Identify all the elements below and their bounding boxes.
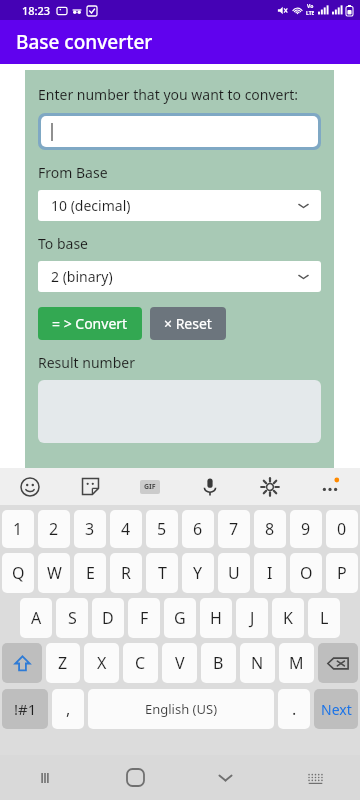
button[interactable]: A: [20, 598, 52, 638]
staticText: F: [140, 607, 149, 629]
staticText: 9: [301, 518, 311, 540]
staticText: 1: [13, 518, 23, 540]
button[interactable]: V: [162, 643, 197, 683]
button[interactable]: 0: [326, 510, 358, 548]
button[interactable]: F: [128, 598, 160, 638]
button[interactable]: E: [74, 553, 106, 593]
button[interactable]: M: [279, 643, 314, 683]
button[interactable]: W: [38, 553, 70, 593]
button[interactable]: I: [254, 553, 286, 593]
button[interactable]: 1: [2, 510, 34, 548]
button[interactable]: Next: [314, 689, 358, 729]
staticText: 10 (decimal): [51, 196, 131, 215]
button[interactable]: X: [84, 643, 119, 683]
staticText: = > Convert: [52, 314, 128, 333]
staticText: L: [320, 607, 329, 629]
staticText: 2 (binary): [51, 267, 113, 286]
button[interactable]: .: [278, 689, 310, 729]
button[interactable]: Recent apps: [0, 755, 90, 800]
button[interactable]: Hide keyboard: [180, 755, 270, 800]
staticText: Y: [193, 562, 203, 584]
staticText: !#1: [14, 699, 37, 719]
button[interactable]: 10 (decimal): [38, 190, 321, 221]
button[interactable]: Backspace: [318, 643, 358, 683]
staticText: H: [210, 607, 222, 629]
button[interactable]: 2 (binary): [38, 261, 321, 292]
staticText: G: [174, 607, 186, 629]
staticText: M: [289, 652, 304, 674]
button[interactable]: R: [110, 553, 142, 593]
button[interactable]: [41, 116, 318, 147]
button[interactable]: J: [236, 598, 268, 638]
button[interactable]: B: [201, 643, 236, 683]
staticText: Q: [12, 562, 25, 584]
button[interactable]: Emoji: [0, 468, 60, 505]
button[interactable]: N: [240, 643, 275, 683]
button[interactable]: !#1: [2, 689, 48, 729]
staticText: 5: [157, 518, 167, 540]
button[interactable]: C: [123, 643, 158, 683]
button[interactable]: Home: [90, 755, 180, 800]
button[interactable]: U: [218, 553, 250, 593]
staticText: A: [31, 607, 42, 629]
button[interactable]: Keyboard settings: [240, 468, 300, 505]
button[interactable]: Q: [2, 553, 34, 593]
button[interactable]: K: [272, 598, 304, 638]
staticText: 0: [337, 518, 347, 540]
staticText: Result number: [38, 353, 135, 372]
button[interactable]: Z: [46, 643, 80, 683]
button[interactable]: = > Convert: [38, 307, 142, 340]
button[interactable]: T: [146, 553, 178, 593]
staticText: T: [158, 562, 167, 584]
button[interactable]: L: [308, 598, 340, 638]
staticText: 4: [121, 518, 131, 540]
button[interactable]: English (US): [88, 689, 274, 729]
staticText: Vo: [307, 3, 314, 10]
button[interactable]: Voice input: [180, 468, 240, 505]
button[interactable]: 4: [110, 510, 142, 548]
button[interactable]: S: [56, 598, 88, 638]
button[interactable]: 7: [218, 510, 250, 548]
staticText: C: [135, 652, 146, 674]
staticText: B: [213, 652, 224, 674]
staticText: W: [47, 562, 62, 584]
button[interactable]: 9: [290, 510, 322, 548]
staticText: 8: [265, 518, 275, 540]
button[interactable]: H: [200, 598, 232, 638]
staticText: P: [337, 562, 347, 584]
button[interactable]: Switch keyboard: [270, 755, 360, 800]
button[interactable]: Shift: [2, 643, 42, 683]
staticText: U: [228, 562, 240, 584]
staticText: 2: [49, 518, 59, 540]
button[interactable]: × Reset: [150, 307, 226, 340]
staticText: From Base: [38, 163, 108, 182]
button[interactable]: 5: [146, 510, 178, 548]
staticText: X: [97, 652, 107, 674]
button[interactable]: More options: [300, 468, 360, 505]
staticText: LTE: [306, 10, 315, 17]
button[interactable]: P: [326, 553, 358, 593]
button[interactable]: 6: [182, 510, 214, 548]
staticText: Next: [321, 700, 352, 719]
button[interactable]: D: [92, 598, 124, 638]
staticText: 7: [229, 518, 239, 540]
button[interactable]: O: [290, 553, 322, 593]
staticText: GIF: [144, 482, 156, 492]
button[interactable]: Y: [182, 553, 214, 593]
button[interactable]: 8: [254, 510, 286, 548]
button[interactable]: 3: [74, 510, 106, 548]
staticText: O: [300, 562, 313, 584]
staticText: Base converter: [16, 29, 153, 55]
staticText: ,: [66, 698, 71, 720]
button[interactable]: Stickers: [60, 468, 120, 505]
button[interactable]: 2: [38, 510, 70, 548]
staticText: 18:23: [22, 3, 51, 18]
staticText: × Reset: [164, 314, 212, 333]
button[interactable]: G: [164, 598, 196, 638]
staticText: Enter number that you want to convert:: [38, 85, 299, 104]
button[interactable]: ,: [52, 689, 84, 729]
staticText: E: [86, 562, 95, 584]
staticText: D: [102, 607, 114, 629]
button[interactable]: GIF: [120, 468, 180, 505]
